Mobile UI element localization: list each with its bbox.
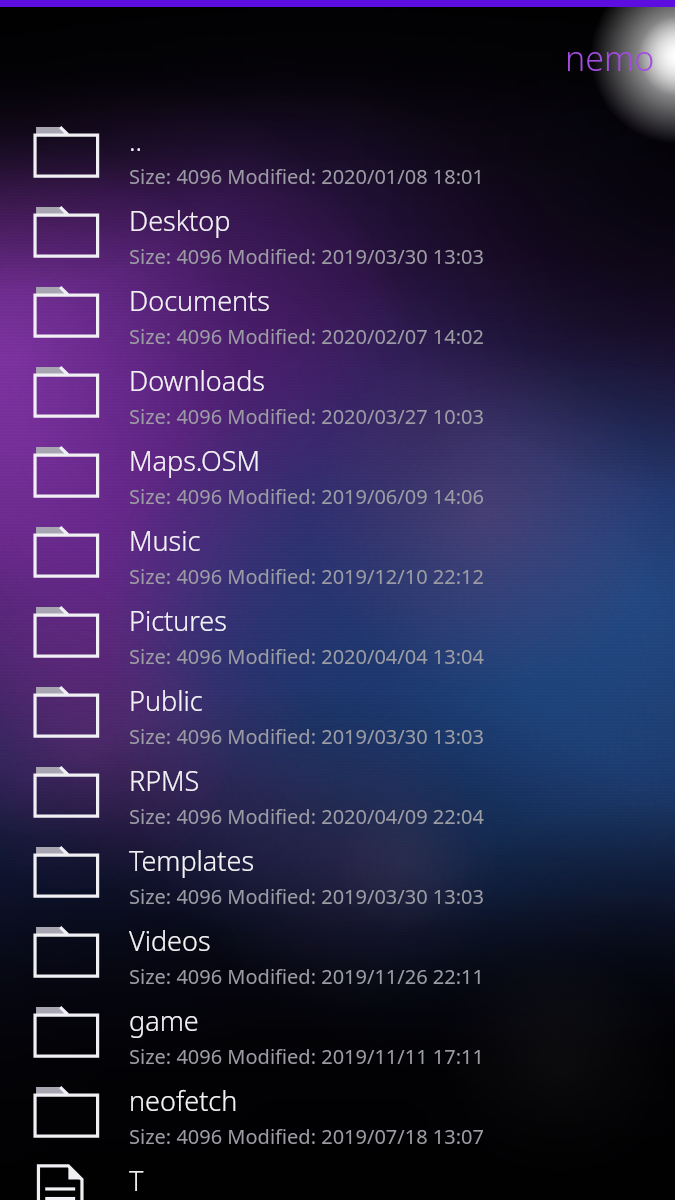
button[interactable]: .. <box>0 112 675 192</box>
staticText: Size: 4096 Modified: 2019/12/10 22:12 <box>129 563 484 590</box>
button[interactable]: Templates <box>0 832 675 912</box>
staticText: Music <box>129 522 201 559</box>
staticText: Desktop <box>129 202 231 239</box>
button[interactable]: Documents <box>0 272 675 352</box>
staticText: Size: 4096 Modified: 2019/03/30 13:03 <box>129 883 484 910</box>
staticText: Size: 4096 Modified: 2020/03/27 10:03 <box>129 403 484 430</box>
staticText: Size: 4096 Modified: 2019/03/30 13:03 <box>129 723 484 750</box>
staticText: Pictures <box>129 602 227 639</box>
staticText: Public <box>129 682 203 719</box>
staticText: .. <box>129 122 143 159</box>
staticText: neofetch <box>129 1082 238 1119</box>
button[interactable]: RPMS <box>0 752 675 832</box>
staticText: Size: 4096 Modified: 2019/03/30 13:03 <box>129 243 484 270</box>
staticText: Documents <box>129 282 270 319</box>
staticText: game <box>129 1002 199 1039</box>
staticText: Size: 4096 Modified: 2019/11/26 22:11 <box>129 963 484 990</box>
button[interactable]: Desktop <box>0 192 675 272</box>
button[interactable]: neofetch <box>0 1072 675 1152</box>
staticText: Size: 4096 Modified: 2020/04/09 22:04 <box>129 803 484 830</box>
staticText: Templates <box>129 842 255 879</box>
staticText: RPMS <box>129 762 200 799</box>
button[interactable]: Videos <box>0 912 675 992</box>
button[interactable]: Music <box>0 512 675 592</box>
button[interactable]: Maps.OSM <box>0 432 675 512</box>
staticText: Size: 4096 Modified: 2020/04/04 13:04 <box>129 643 484 670</box>
button[interactable]: Public <box>0 672 675 752</box>
button[interactable]: Downloads <box>0 352 675 432</box>
staticText: Downloads <box>129 362 265 399</box>
staticText: Size: 4096 Modified: 2019/06/09 14:06 <box>129 483 484 510</box>
staticText: Size: 4096 Modified: 2020/01/08 18:01 <box>129 163 484 190</box>
staticText: T <box>129 1162 144 1199</box>
staticText: Videos <box>129 922 211 959</box>
button[interactable]: game <box>0 992 675 1072</box>
button[interactable]: T <box>0 1152 675 1200</box>
button[interactable]: Pictures <box>0 592 675 672</box>
staticText: Size: 4096 Modified: 2019/11/11 17:11 <box>129 1043 484 1070</box>
staticText: Size: 4096 Modified: 2019/07/18 13:07 <box>129 1123 484 1150</box>
staticText: Size: 4096 Modified: 2020/02/07 14:02 <box>129 323 484 350</box>
button[interactable]: nemo <box>565 35 655 81</box>
staticText: Maps.OSM <box>129 442 261 479</box>
